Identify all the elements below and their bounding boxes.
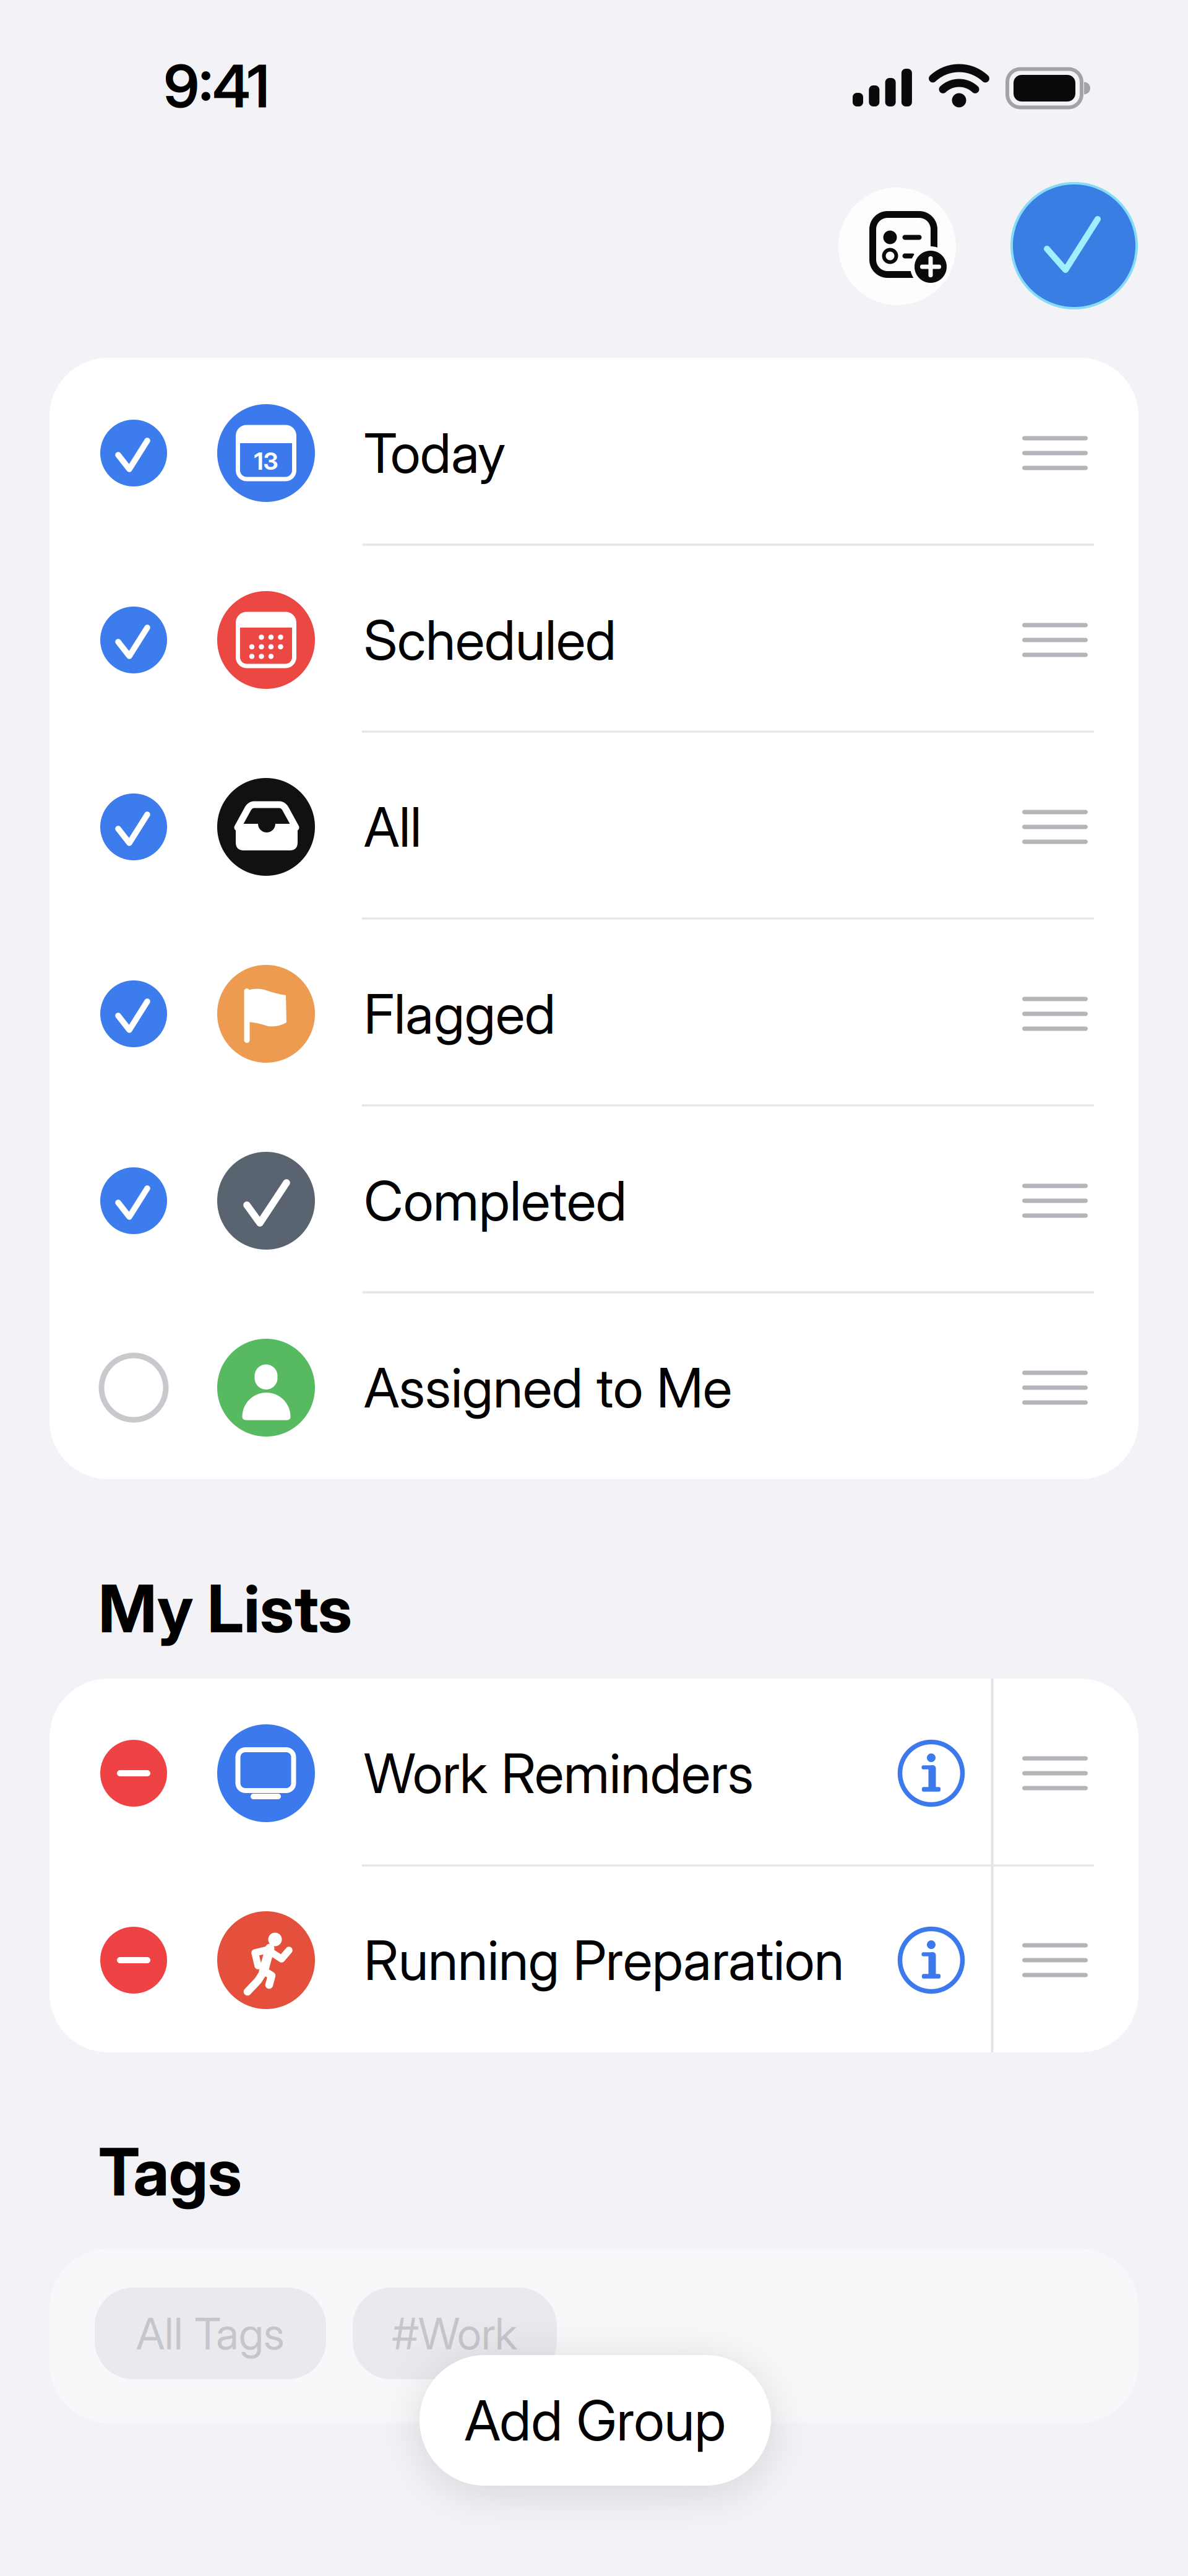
button[interactable]: Add Group — [420, 2355, 771, 2486]
button[interactable]: Done — [1011, 183, 1137, 309]
button[interactable]: Work Reminders — [49, 1680, 1138, 1867]
staticText: Scheduled — [364, 607, 616, 673]
button[interactable]: Scheduled — [49, 547, 1138, 733]
staticText: Completed — [364, 1168, 627, 1234]
staticText: 13 — [254, 447, 278, 476]
button[interactable]: 13 — [49, 360, 1138, 547]
button[interactable]: Completed — [49, 1107, 1138, 1294]
button[interactable]: Flagged — [49, 920, 1138, 1107]
button[interactable]: All Tags — [95, 2288, 326, 2379]
staticText: Running Preparation — [364, 1927, 844, 1993]
staticText: Work Reminders — [364, 1740, 754, 1806]
button[interactable]: Details — [898, 1740, 964, 1806]
button[interactable]: Add Smart List — [838, 188, 956, 305]
button[interactable]: Details — [898, 1927, 964, 1993]
staticText: Flagged — [364, 981, 556, 1047]
staticText: 9:41 — [164, 51, 269, 121]
button[interactable]: #Work — [353, 2288, 557, 2379]
staticText: Assigned to Me — [364, 1355, 732, 1421]
staticText: Tags — [98, 2132, 242, 2211]
button[interactable]: Assigned to Me — [49, 1294, 1138, 1481]
button[interactable]: Running Preparation — [49, 1867, 1138, 2054]
staticText: #Work — [392, 2307, 517, 2360]
staticText: My Lists — [98, 1569, 352, 1648]
staticText: Add Group — [464, 2387, 726, 2454]
button[interactable]: All — [49, 733, 1138, 920]
staticText: Today — [364, 420, 506, 486]
staticText: All Tags — [136, 2307, 285, 2360]
staticText: All — [364, 794, 421, 860]
